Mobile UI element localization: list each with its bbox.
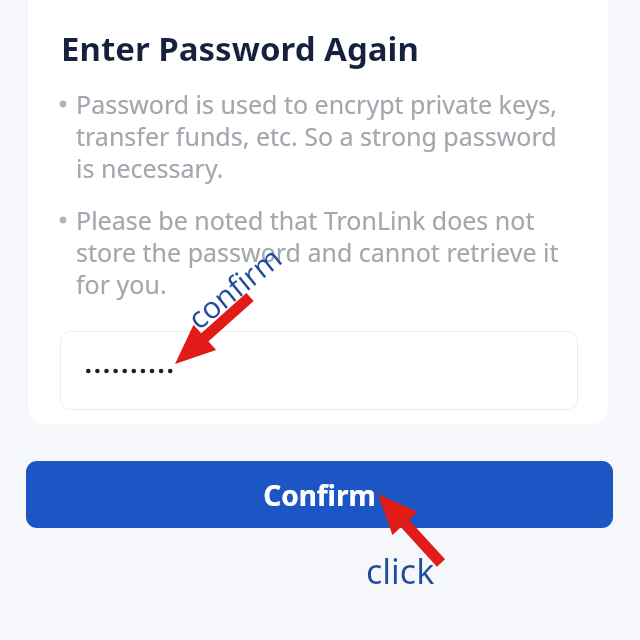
staticText: click here: [366, 548, 511, 588]
staticText: confirm password: [179, 168, 377, 340]
button[interactable]: [60, 331, 578, 410]
staticText: Enter Password Again: [61, 26, 419, 71]
staticText: Please be noted that TronLink does not s…: [76, 203, 578, 301]
staticText: Confirm: [263, 476, 376, 514]
button[interactable]: Confirm: [26, 461, 613, 528]
staticText: Password is used to encrypt private keys…: [76, 87, 578, 185]
